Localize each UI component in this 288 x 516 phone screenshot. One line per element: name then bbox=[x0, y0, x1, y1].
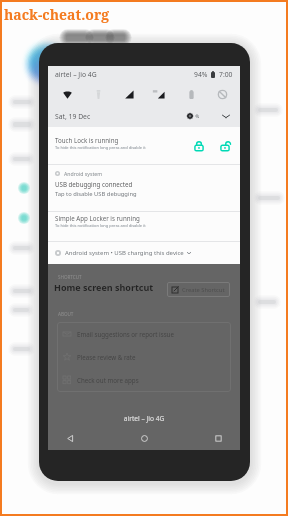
button[interactable]: Android system • USB charging this devic… bbox=[48, 242, 240, 264]
button[interactable]: Create Shortcut bbox=[167, 282, 230, 297]
button[interactable]: Auto rotate bbox=[214, 86, 230, 102]
staticText: Sat, 19 Dec bbox=[55, 112, 91, 121]
staticText: Touch Lock is running bbox=[55, 136, 119, 144]
button[interactable]: Lock screen bbox=[190, 137, 208, 155]
staticText: USB debugging connected bbox=[55, 180, 133, 188]
button[interactable]: Unlock screen bbox=[216, 137, 234, 155]
staticText: airtel – Jio 4G bbox=[48, 414, 240, 423]
button[interactable]: Flashlight bbox=[90, 86, 106, 102]
button[interactable]: Battery saver bbox=[183, 86, 199, 102]
staticText: Tap to disable USB debugging bbox=[55, 190, 137, 198]
button[interactable]: Please review & rate bbox=[57, 345, 231, 368]
staticText: Simple App Locker is running bbox=[55, 214, 140, 222]
button[interactable]: Home bbox=[136, 430, 152, 446]
staticText: Android system bbox=[64, 170, 103, 177]
button[interactable]: Simple App Locker is running bbox=[48, 212, 240, 241]
staticText: To hide this notification long press and… bbox=[55, 145, 146, 150]
button[interactable]: Touch Lock is running bbox=[48, 127, 240, 164]
staticText: Create Shortcut bbox=[182, 286, 225, 294]
staticText: To hide this notification long press and… bbox=[55, 223, 146, 228]
button[interactable]: Settings bbox=[187, 113, 199, 119]
staticText: 7:00 bbox=[219, 70, 233, 79]
button[interactable]: Check out more apps bbox=[57, 368, 231, 391]
button[interactable]: Android system bbox=[48, 165, 240, 211]
staticText: Android system • USB charging this devic… bbox=[65, 249, 184, 257]
staticText: SHORTCUT bbox=[58, 274, 82, 280]
staticText: Email suggestions or report issue bbox=[77, 330, 174, 338]
button[interactable]: Recents bbox=[210, 430, 226, 446]
staticText: Home screen shortcut bbox=[54, 281, 154, 293]
staticText: hack-cheat.org bbox=[4, 5, 110, 24]
button[interactable]: Expand bbox=[220, 110, 232, 122]
staticText: ABOUT bbox=[58, 311, 74, 317]
button[interactable]: Back bbox=[62, 430, 78, 446]
staticText: 94% bbox=[194, 70, 208, 79]
button[interactable]: Mobile signal bbox=[121, 86, 137, 102]
button[interactable]: Mobile data bbox=[152, 86, 168, 102]
button[interactable]: Wi-Fi bbox=[59, 86, 75, 102]
staticText: Please review & rate bbox=[77, 353, 136, 361]
staticText: Check out more apps bbox=[77, 376, 139, 384]
staticText: airtel – Jio 4G bbox=[55, 70, 97, 79]
button[interactable]: Email suggestions or report issue bbox=[57, 322, 231, 345]
